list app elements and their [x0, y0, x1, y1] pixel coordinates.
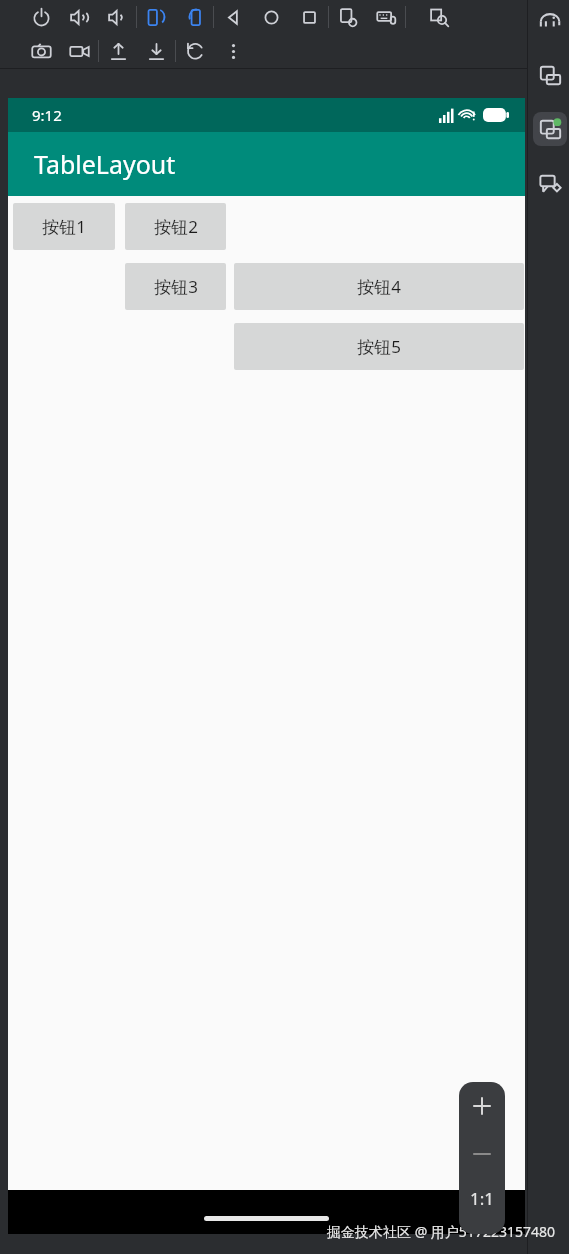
button[interactable]: Screenshot	[22, 36, 60, 66]
staticText: 按钮5	[357, 335, 401, 358]
button[interactable]: Rotate left	[137, 2, 175, 32]
button[interactable]: Inspect	[420, 2, 458, 32]
button[interactable]: Rotate right	[175, 2, 213, 32]
button[interactable]: Download	[137, 36, 175, 66]
button[interactable]: Emulator	[533, 4, 567, 38]
button[interactable]: Input	[367, 2, 405, 32]
button[interactable]: 1:1	[459, 1178, 505, 1218]
button[interactable]: 按钮3	[125, 263, 226, 310]
staticText: 按钮3	[154, 275, 198, 298]
staticText: 按钮4	[357, 275, 401, 298]
button[interactable]: Chat	[533, 166, 567, 200]
button[interactable]: Zoom in	[459, 1082, 505, 1130]
button[interactable]: 按钮1	[13, 203, 115, 250]
button[interactable]: Device settings	[329, 2, 367, 32]
button[interactable]: Record	[60, 36, 98, 66]
staticText: TableLayout	[34, 147, 176, 181]
button[interactable]: 按钮2	[125, 203, 226, 250]
button[interactable]: Display	[533, 112, 567, 146]
button[interactable]: Volume down	[98, 2, 136, 32]
button[interactable]: 按钮4	[234, 263, 524, 310]
button[interactable]: Volume up	[60, 2, 98, 32]
button[interactable]: Zoom out	[459, 1130, 505, 1178]
staticText: 按钮2	[154, 215, 198, 238]
staticText: 掘金技术社区 @ 用户517223157480	[327, 1222, 555, 1241]
button[interactable]: Upload	[99, 36, 137, 66]
button[interactable]: Power	[22, 2, 60, 32]
staticText: 9:12	[32, 105, 62, 125]
staticText: 1:1	[470, 1187, 495, 1210]
button[interactable]: Device	[533, 58, 567, 92]
button[interactable]: More	[214, 36, 252, 66]
button[interactable]: History	[176, 36, 214, 66]
button[interactable]: 按钮5	[234, 323, 524, 370]
button[interactable]: Home	[252, 2, 290, 32]
staticText: 按钮1	[42, 215, 86, 238]
button[interactable]: Overview	[290, 2, 328, 32]
button[interactable]: Back	[214, 2, 252, 32]
